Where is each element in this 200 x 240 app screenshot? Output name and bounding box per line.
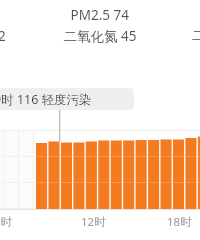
button[interactable]: PM2.5 hourly air quality chart (0, 0, 200, 240)
